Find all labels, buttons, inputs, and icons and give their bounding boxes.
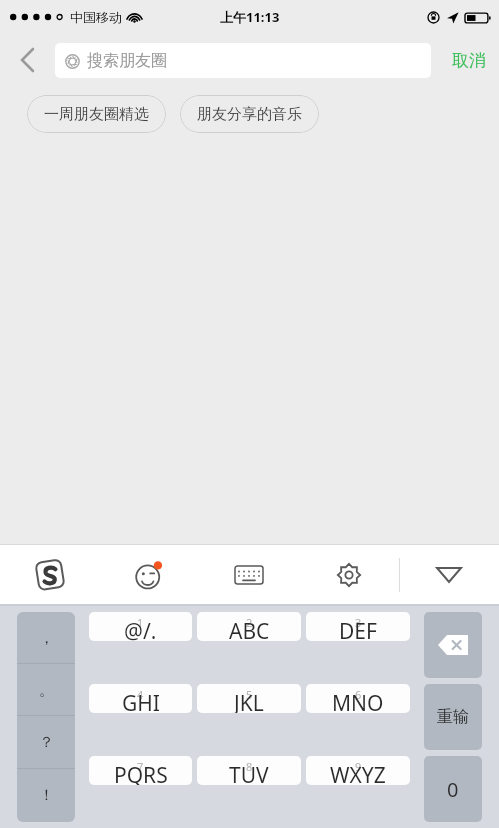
staticText: 3 xyxy=(355,615,362,630)
staticText: PQRS xyxy=(114,761,168,785)
staticText: ！ xyxy=(39,786,54,805)
button[interactable]: ！ xyxy=(17,769,75,822)
staticText: 7 xyxy=(137,759,144,774)
staticText: 9 xyxy=(355,759,362,774)
staticText: TUV xyxy=(229,761,269,785)
staticText: 1 xyxy=(137,615,144,630)
button[interactable]: 重输 xyxy=(424,684,482,750)
button[interactable]: 6 xyxy=(306,684,410,713)
button[interactable]: 8 xyxy=(197,756,301,785)
button[interactable]: 2 xyxy=(197,612,301,641)
staticText: 重输 xyxy=(437,707,469,727)
button[interactable]: Backspace xyxy=(424,612,482,678)
staticText: 5 xyxy=(246,687,253,702)
button[interactable]: 3 xyxy=(306,612,410,641)
button[interactable]: Emoji xyxy=(99,544,199,606)
staticText: 一周朋友圈精选 xyxy=(44,105,149,124)
staticText: DEF xyxy=(339,617,377,641)
button[interactable]: 取消 xyxy=(448,44,490,77)
button[interactable]: 1 xyxy=(89,612,192,641)
staticText: 朋友分享的音乐 xyxy=(197,105,302,124)
staticText: JKL xyxy=(234,689,264,713)
button[interactable]: Back xyxy=(0,34,55,86)
button[interactable]: 5 xyxy=(197,684,301,713)
button[interactable]: Hide keyboard xyxy=(399,544,499,606)
staticText: 2 xyxy=(246,615,253,630)
button[interactable]: ， xyxy=(17,612,75,664)
button[interactable]: 0 xyxy=(424,756,482,822)
button[interactable]: 。 xyxy=(17,664,75,716)
staticText: @/. xyxy=(124,617,157,641)
staticText: 6 xyxy=(355,687,362,702)
staticText: 8 xyxy=(246,759,253,774)
staticText: 上午11:13 xyxy=(220,8,280,26)
button[interactable]: 4 xyxy=(89,684,192,713)
staticText: 。 xyxy=(39,681,54,700)
staticText: 4 xyxy=(137,687,144,702)
button[interactable]: 一周朋友圈精选 xyxy=(27,95,166,133)
button[interactable]: 搜索朋友圈 xyxy=(55,43,431,78)
staticText: ？ xyxy=(39,733,54,752)
button[interactable]: 朋友分享的音乐 xyxy=(180,95,319,133)
staticText: MNO xyxy=(332,689,384,713)
staticText: 搜索朋友圈 xyxy=(87,51,167,71)
staticText: ABC xyxy=(229,617,270,641)
button[interactable]: Settings xyxy=(299,544,399,606)
staticText: 取消 xyxy=(452,50,486,71)
staticText: 0 xyxy=(447,776,459,803)
staticText: GHI xyxy=(122,689,160,713)
button[interactable]: 9 xyxy=(306,756,410,785)
staticText: ， xyxy=(39,629,54,648)
button[interactable]: 7 xyxy=(89,756,192,785)
button[interactable]: Keyboard layout xyxy=(199,544,299,606)
staticText: WXYZ xyxy=(330,761,386,785)
staticText: 中国移动 xyxy=(70,9,122,25)
button[interactable]: Sogou input xyxy=(0,544,99,606)
button[interactable]: ？ xyxy=(17,716,75,769)
